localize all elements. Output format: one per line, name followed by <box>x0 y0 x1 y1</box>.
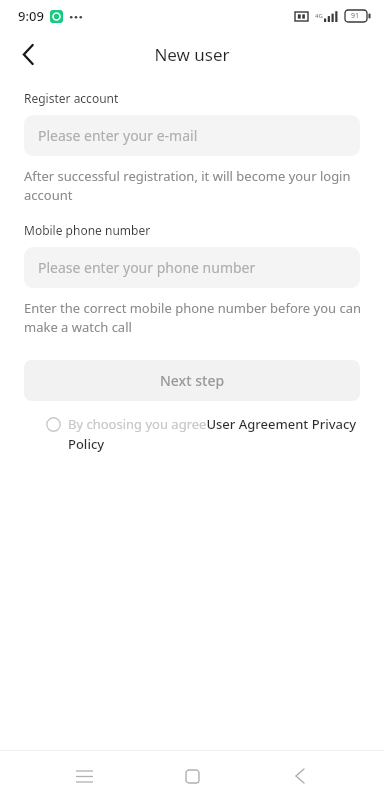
button[interactable]: Agree to terms <box>46 415 360 453</box>
staticText: Enter the correct mobile phone number be… <box>24 299 366 336</box>
staticText: Please enter your e-mail <box>38 126 198 145</box>
staticText: Register account <box>24 90 119 106</box>
staticText: After successful registration, it will b… <box>24 167 378 204</box>
button[interactable]: Recents <box>60 752 108 800</box>
other: Agree to terms <box>46 417 61 432</box>
button[interactable]: Back <box>6 32 50 76</box>
staticText: 91 <box>351 11 360 21</box>
staticText: 4G <box>315 12 323 20</box>
button[interactable]: Home <box>168 752 216 800</box>
staticText: Mobile phone number <box>24 222 151 238</box>
button[interactable]: Next step <box>24 360 360 401</box>
staticText: 9:09 <box>18 7 44 25</box>
button[interactable]: Back <box>276 752 324 800</box>
button[interactable]: Please enter your phone number <box>24 247 360 288</box>
staticText: By choosing you agreeUser Agreement Priv… <box>68 415 360 453</box>
button[interactable]: Please enter your e-mail <box>24 115 360 156</box>
staticText: New user <box>154 43 230 66</box>
staticText: Next step <box>160 371 225 390</box>
staticText: Please enter your phone number <box>38 258 256 277</box>
